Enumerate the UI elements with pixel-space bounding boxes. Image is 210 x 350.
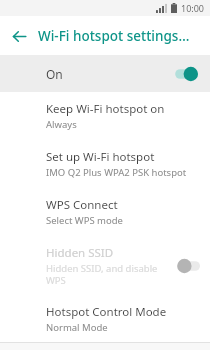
- staticText: Wi-Fi hotspot settings…: [38, 27, 190, 45]
- staticText: Hotspot Control Mode: [46, 304, 167, 320]
- staticText: Set up Wi-Fi hotspot: [46, 149, 155, 165]
- button[interactable]: Back: [0, 17, 38, 55]
- staticText: Always: [46, 118, 77, 131]
- staticText: On: [46, 66, 168, 82]
- staticText: Hidden SSID, and disable WPS: [46, 262, 166, 287]
- staticText: Select WPS mode: [46, 214, 123, 227]
- staticText: 10:00: [181, 2, 205, 14]
- button[interactable]: On: [0, 55, 210, 92]
- staticText: Hidden SSID: [46, 245, 114, 261]
- button[interactable]: Keep Wi-Fi hotspot on: [0, 96, 210, 140]
- button[interactable]: WPS Connect: [0, 188, 210, 236]
- button[interactable]: Set up Wi-Fi hotspot: [0, 140, 210, 188]
- button[interactable]: Hotspot Control Mode: [0, 296, 210, 342]
- staticText: IMO Q2 Plus WPA2 PSK hotspot: [46, 166, 187, 179]
- button[interactable]: Hidden SSID: [0, 236, 210, 296]
- staticText: Keep Wi-Fi hotspot on: [46, 101, 165, 117]
- staticText: WPS Connect: [46, 197, 118, 213]
- staticText: Normal Mode: [46, 321, 108, 334]
